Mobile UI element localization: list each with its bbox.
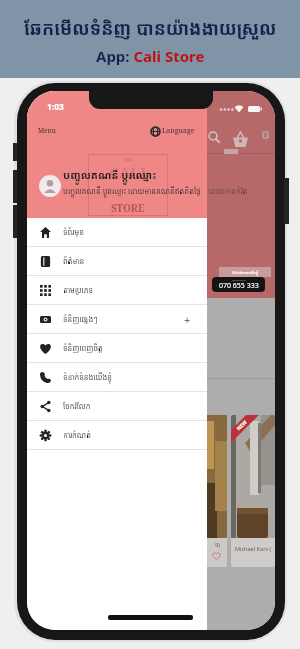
button[interactable]: ទំនិញផ្សេងៗ [27,305,207,334]
staticText: CALI [109,162,147,182]
staticText: ទំនាក់ទំនងយើងខ្ញុំ [63,372,113,382]
staticText: 9) [215,541,220,548]
staticText: + [184,312,191,327]
staticText: តាមប្រភេទ [63,285,94,295]
button[interactable]: ទំនាក់ទំនងយើងខ្ញុំ [27,363,207,392]
button[interactable]: NEW [231,415,275,567]
button[interactable]: ទំនិញពេញចិត្ត [27,334,207,363]
staticText: THE [124,157,133,162]
button[interactable]: តាមប្រភេទ [27,276,207,305]
staticText: Menu [38,126,56,135]
staticText: ទំនិញផ្សេងៗ [63,314,98,324]
staticText: 070 655 333 [219,281,259,291]
staticText: ទំនិញពេញចិត្ត [63,343,103,353]
staticText: បញ្ចូលគណនី ប្តូរឈ្មោះ ដោយមានគណនីឥតគិតថ្ល… [63,186,201,196]
staticText: STORE [111,201,145,215]
staticText: ដោយមានកំរិត [208,186,248,196]
staticText: បញ្ចូលគណនី ប្តូរឈ្មោះ [63,168,157,182]
staticText: ឆែកមើលទំនិញ បានយ៉ាងងាយស្រួល [24,16,277,41]
staticText: 0 [264,132,267,138]
staticText: ការកំណត់ [63,430,91,440]
button[interactable]: ព័ត៌មាន [27,247,207,276]
button[interactable]: ទំព័រមុខ [27,218,207,247]
button[interactable]: ការកំណត់ [27,421,207,450]
staticText: ទាក់ទងមកយើងខ្ញុំ [232,270,259,275]
staticText: App: Cali Store [96,46,205,66]
staticText: mmmmmm [232,278,247,281]
button[interactable]: Language [151,126,195,136]
staticText: ព័ត៌មាន [63,256,85,266]
staticText: Michael Kors ( [235,545,272,552]
staticText: 1:03 [47,101,64,113]
button[interactable] [208,131,220,143]
button[interactable]: ចែករំលែក [27,392,207,421]
button[interactable]: mmmmmm [212,277,265,292]
staticText: NEW [235,419,249,432]
staticText: ចែករំលែក [63,401,91,411]
staticText: ទំព័រមុខ [63,227,84,237]
button[interactable] [233,131,248,147]
staticText: Language [162,126,195,136]
